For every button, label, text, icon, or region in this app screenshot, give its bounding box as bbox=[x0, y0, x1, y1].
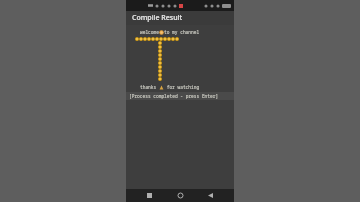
button[interactable]: Compile Result bbox=[126, 11, 234, 25]
staticText: [Process completed - press Enter] bbox=[129, 93, 219, 99]
staticText: thanks bbox=[140, 84, 159, 90]
staticText: for watching bbox=[164, 84, 200, 90]
staticText: to my channel bbox=[164, 29, 200, 35]
button[interactable]: Back bbox=[204, 189, 217, 202]
button[interactable]: Recent apps bbox=[143, 189, 156, 202]
button[interactable]: Home bbox=[174, 189, 187, 202]
staticText: welcome bbox=[140, 29, 159, 35]
staticText: Compile Result bbox=[132, 13, 183, 23]
